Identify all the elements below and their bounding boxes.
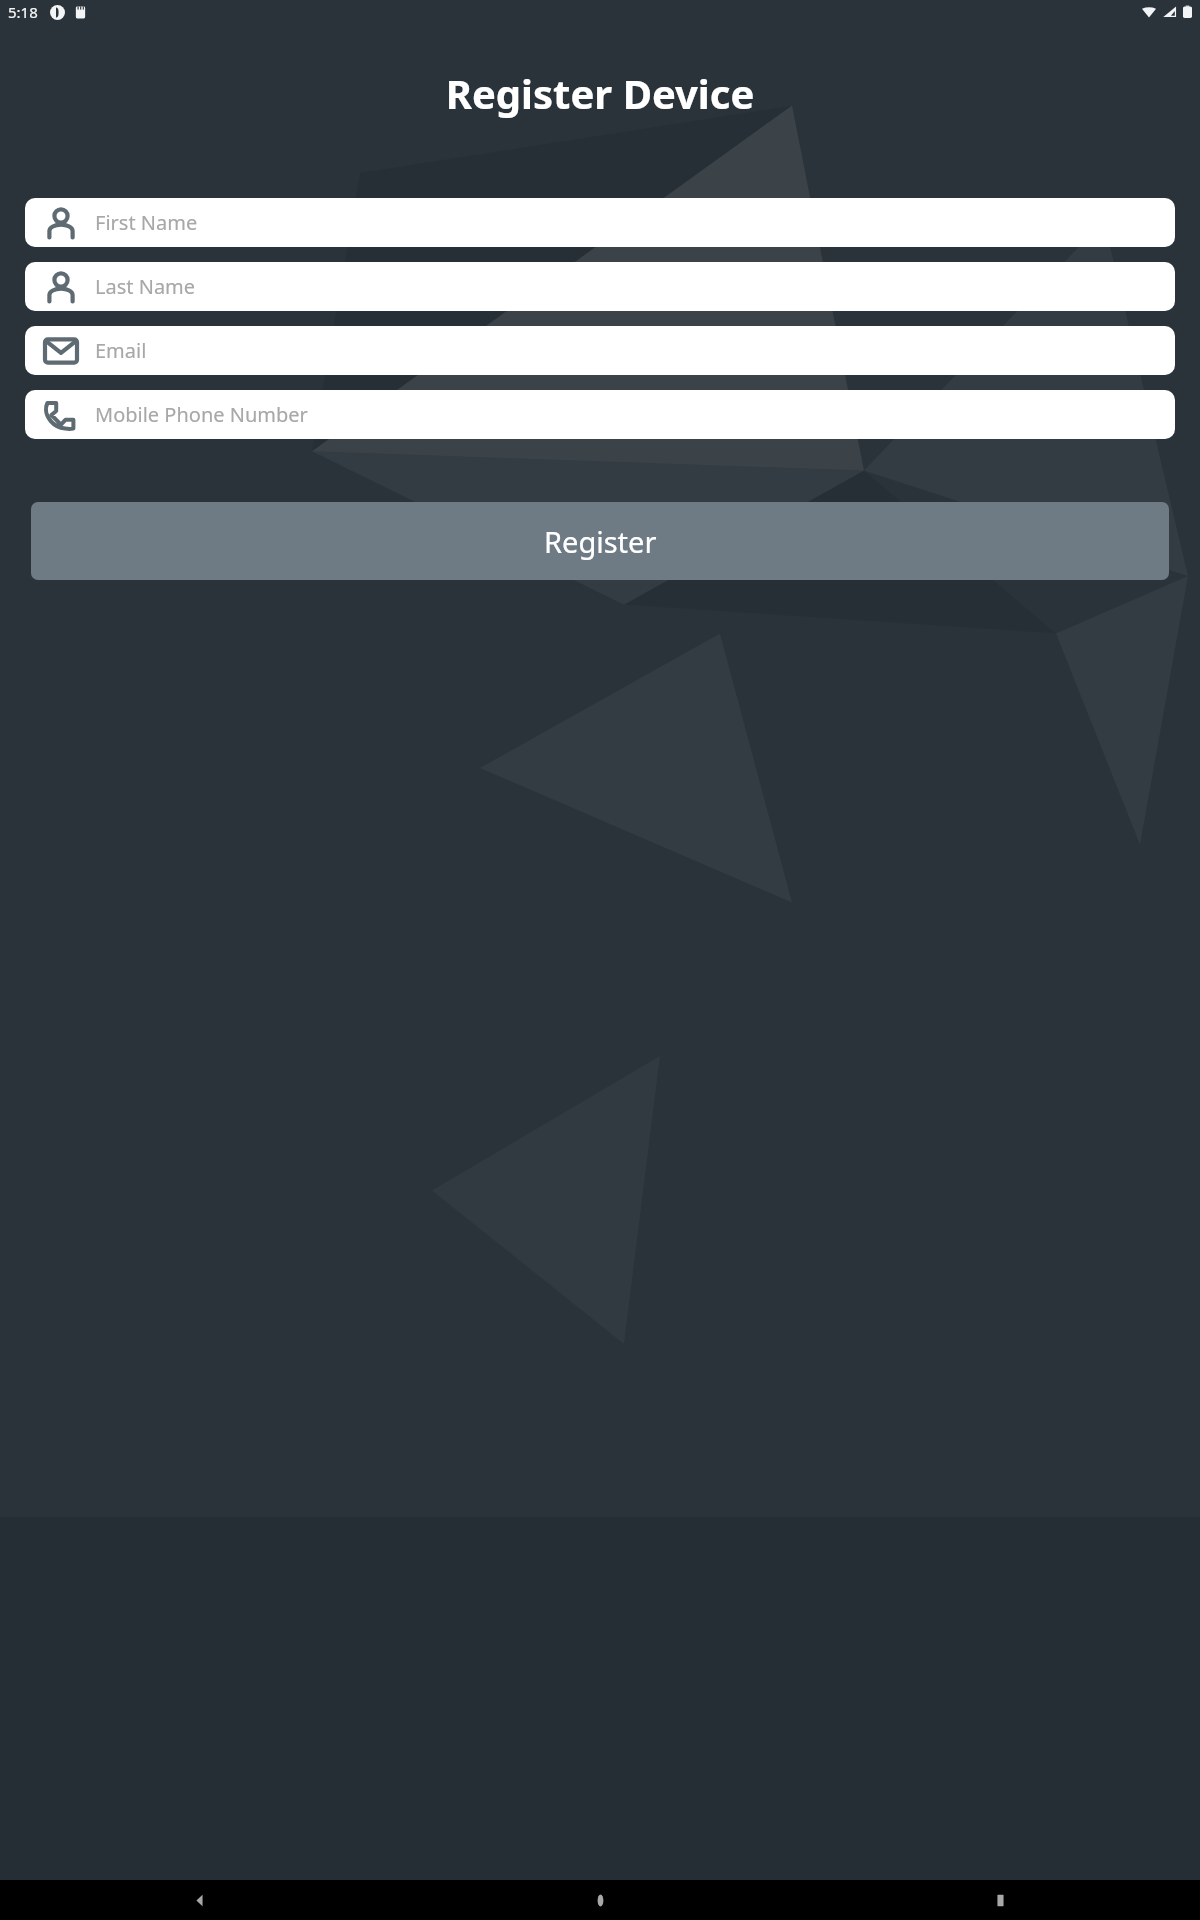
button[interactable]: Recent apps: [800, 1880, 1200, 1920]
button[interactable]: Home: [400, 1880, 800, 1920]
button[interactable]: Mobile Phone Number: [25, 390, 1175, 439]
staticText: Mobile Phone Number: [95, 401, 308, 428]
button[interactable]: Back: [0, 1880, 400, 1920]
button[interactable]: Email: [25, 326, 1175, 375]
staticText: Register: [544, 522, 657, 561]
button[interactable]: Last Name: [25, 262, 1175, 311]
staticText: Email: [95, 337, 147, 364]
button[interactable]: First Name: [25, 198, 1175, 247]
staticText: First Name: [95, 209, 198, 236]
button[interactable]: Register: [31, 502, 1169, 580]
staticText: Register Device: [0, 66, 1200, 120]
staticText: Last Name: [95, 273, 196, 300]
staticText: 5:18: [8, 2, 38, 22]
